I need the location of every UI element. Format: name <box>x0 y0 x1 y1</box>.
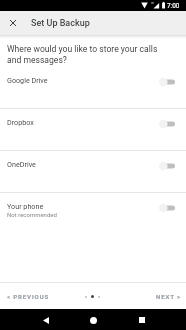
button[interactable]: NEXT > <box>149 287 186 306</box>
staticText: OneDrive <box>7 160 36 168</box>
button[interactable]: Google Drive <box>0 67 186 108</box>
staticText: Set Up Backup <box>31 18 90 29</box>
button[interactable]: Close <box>5 15 21 31</box>
staticText: 7:00 <box>167 2 180 10</box>
staticText: Your phone <box>7 202 44 210</box>
button[interactable]: OneDrive <box>0 151 186 192</box>
button[interactable]: Dropbox <box>0 109 186 150</box>
staticText: NEXT > <box>156 293 181 300</box>
button[interactable]: Back <box>40 314 52 326</box>
button[interactable]: Home <box>87 314 99 326</box>
staticText: Google Drive <box>7 76 48 84</box>
staticText: Where would you like to store your calls… <box>7 44 162 65</box>
staticText: Not recommended <box>7 211 57 218</box>
button[interactable]: Your phone <box>0 193 186 234</box>
staticText: < PREVIOUS <box>7 293 50 300</box>
button[interactable]: < PREVIOUS <box>0 287 57 306</box>
staticText: Dropbox <box>7 118 34 126</box>
button[interactable]: Recents <box>136 314 148 326</box>
